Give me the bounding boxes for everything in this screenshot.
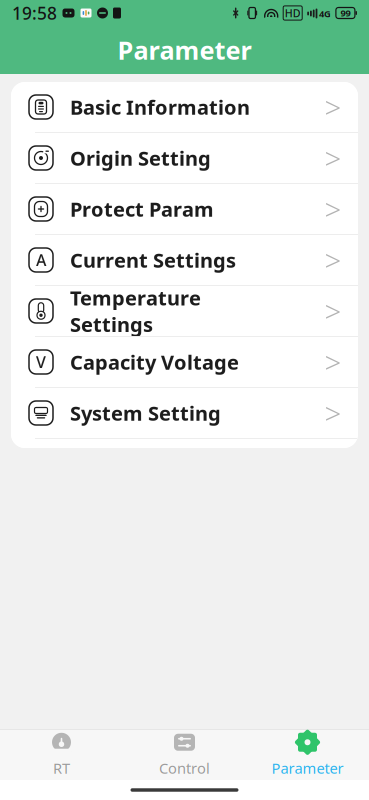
staticText: Basic Information: [70, 94, 250, 120]
staticText: >: [324, 87, 341, 126]
staticText: 4G: [319, 7, 331, 20]
staticText: Protect Param: [70, 196, 214, 222]
button[interactable]: Parameter: [0, 26, 369, 74]
staticText: Temperature Settings: [70, 284, 201, 337]
staticText: Control: [159, 758, 210, 778]
staticText: >: [324, 393, 341, 432]
button[interactable]: Basic Information: [11, 82, 358, 132]
button[interactable]: V: [11, 337, 358, 387]
staticText: System Setting: [70, 400, 221, 426]
staticText: Capacity Voltage: [70, 349, 239, 375]
staticText: >: [324, 240, 341, 279]
button[interactable]: Origin Setting: [11, 133, 358, 183]
staticText: Current Settings: [70, 247, 236, 273]
staticText: 19:58: [12, 1, 57, 24]
staticText: A: [36, 249, 46, 271]
staticText: HD: [285, 6, 301, 20]
button[interactable]: A: [11, 235, 358, 285]
button[interactable]: System Setting: [11, 388, 358, 438]
staticText: V: [36, 351, 46, 373]
button[interactable]: Temperature Settings: [11, 286, 358, 336]
staticText: Parameter: [117, 33, 251, 67]
staticText: >: [324, 138, 341, 177]
staticText: >: [324, 342, 341, 381]
staticText: >: [324, 291, 341, 330]
staticText: 99: [340, 7, 350, 19]
button[interactable]: Protect Param: [11, 184, 358, 234]
staticText: >: [324, 189, 341, 228]
staticText: Origin Setting: [70, 145, 211, 171]
staticText: RT: [53, 758, 70, 778]
button[interactable]: RT: [0, 730, 123, 780]
staticText: Parameter: [271, 758, 343, 778]
button[interactable]: Control: [123, 730, 246, 780]
button[interactable]: Parameter: [246, 730, 369, 780]
